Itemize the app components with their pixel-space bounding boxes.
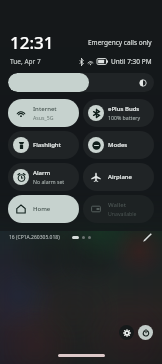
staticText: Internet xyxy=(33,105,57,113)
staticText: Airplane mode xyxy=(108,173,150,181)
staticText: Emergency calls only xyxy=(88,38,152,47)
button[interactable]: Alarm xyxy=(8,163,79,191)
button[interactable]: ePlus Buds Pro 2 xyxy=(83,99,154,127)
staticText: No alarm set xyxy=(33,178,65,185)
staticText: Until 7:30 PM xyxy=(111,57,152,66)
button[interactable]: Edit tiles xyxy=(140,230,154,244)
button[interactable]: Brightness xyxy=(8,73,154,92)
staticText: ePlus Buds Pro 2 xyxy=(108,105,150,113)
staticText: Unavailable xyxy=(108,210,137,217)
button[interactable]: Home xyxy=(8,195,79,223)
staticText: Home xyxy=(33,205,51,213)
staticText: 16 (CP1A.260305.018) xyxy=(9,234,60,241)
staticText: 12:31 xyxy=(10,31,54,54)
button[interactable]: Settings xyxy=(119,325,134,340)
button[interactable]: Airplane mode xyxy=(83,163,154,191)
staticText: Asus_5G xyxy=(33,114,54,121)
staticText: Flashlight xyxy=(33,141,61,149)
staticText: Tue, Apr 7 xyxy=(10,57,41,66)
button[interactable]: Modes xyxy=(83,131,154,159)
button[interactable]: Wallet xyxy=(83,195,154,223)
staticText: Alarm xyxy=(33,169,51,177)
staticText: Modes xyxy=(108,141,128,149)
staticText: 100% battery xyxy=(108,114,141,121)
button[interactable]: Internet xyxy=(8,99,79,127)
staticText: Wallet xyxy=(108,201,126,209)
button[interactable]: Flashlight xyxy=(8,131,79,159)
button[interactable]: Power xyxy=(138,325,153,340)
